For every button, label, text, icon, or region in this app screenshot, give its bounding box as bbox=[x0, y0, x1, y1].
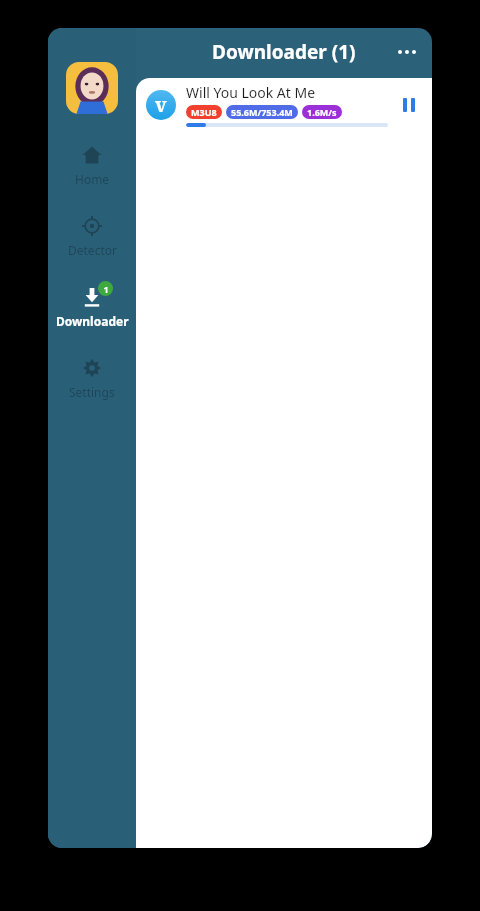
staticText: v bbox=[155, 92, 167, 118]
button[interactable]: More options bbox=[390, 35, 424, 69]
button[interactable]: Detector bbox=[48, 213, 136, 260]
staticText: Settings bbox=[69, 384, 115, 400]
staticText: Will You Look At Me bbox=[186, 83, 316, 102]
button[interactable]: Pause download bbox=[394, 90, 424, 120]
button[interactable]: Settings bbox=[48, 355, 136, 402]
button[interactable]: 1 bbox=[48, 284, 136, 331]
staticText: M3U8 bbox=[191, 106, 217, 118]
staticText: Downloader bbox=[56, 313, 129, 329]
staticText: 55.6M/753.4M bbox=[231, 106, 293, 118]
button[interactable]: Home bbox=[48, 142, 136, 189]
staticText: Detector bbox=[68, 242, 117, 258]
staticText: 1.6M/s bbox=[307, 106, 337, 118]
staticText: 1 bbox=[103, 283, 109, 295]
staticText: Home bbox=[75, 171, 110, 187]
button[interactable]: v bbox=[136, 78, 432, 132]
staticText: Downloader (1) bbox=[212, 39, 356, 65]
button[interactable]: Profile bbox=[66, 62, 118, 114]
